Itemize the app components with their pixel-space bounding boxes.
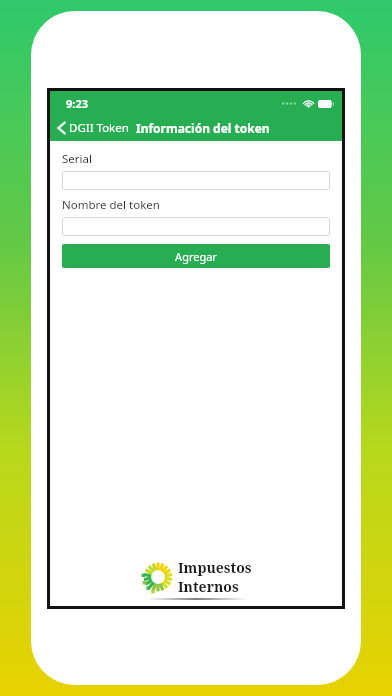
button[interactable] — [62, 217, 330, 236]
staticText: Información del token — [136, 120, 270, 136]
button[interactable] — [62, 171, 330, 190]
staticText: Serial — [62, 151, 92, 167]
staticText: DGII Token — [69, 120, 129, 136]
staticText: Internos — [178, 577, 239, 596]
staticText: Nombre del token — [62, 197, 160, 213]
staticText: Agregar — [175, 249, 217, 264]
staticText: 9:23 — [66, 96, 88, 111]
button[interactable]: Agregar — [62, 244, 330, 268]
button[interactable]: Back to DGII Token — [50, 117, 131, 139]
staticText: Impuestos — [178, 558, 252, 577]
